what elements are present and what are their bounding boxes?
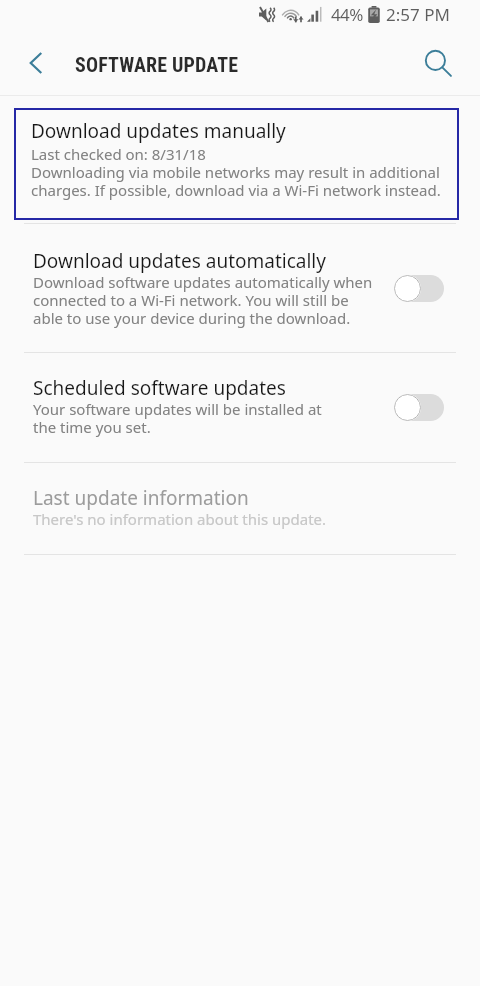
button[interactable]: Download updates manually	[14, 108, 459, 220]
staticText: Download software updates automatically …	[33, 274, 373, 328]
button[interactable]: Scheduled software updates	[0, 353, 480, 462]
staticText: Last checked on: 8/31/18 Downloading via…	[31, 146, 441, 200]
staticText: SOFTWARE UPDATE	[75, 53, 239, 76]
button[interactable]: Navigate up	[18, 45, 54, 81]
button[interactable]: Search	[418, 43, 458, 83]
button[interactable]: Download updates automatically	[0, 224, 480, 352]
staticText: Scheduled software updates	[33, 375, 286, 401]
button[interactable]: Toggle	[394, 394, 444, 421]
staticText: There's no information about this update…	[33, 511, 327, 529]
staticText: Your software updates will be installed …	[33, 401, 322, 437]
staticText: 44%	[331, 3, 363, 26]
staticText: Last update information	[33, 485, 249, 511]
staticText: Download updates manually	[31, 118, 286, 144]
staticText: Download updates automatically	[33, 248, 326, 274]
staticText: 2:57 PM	[386, 3, 450, 26]
button[interactable]: Toggle	[394, 275, 444, 302]
